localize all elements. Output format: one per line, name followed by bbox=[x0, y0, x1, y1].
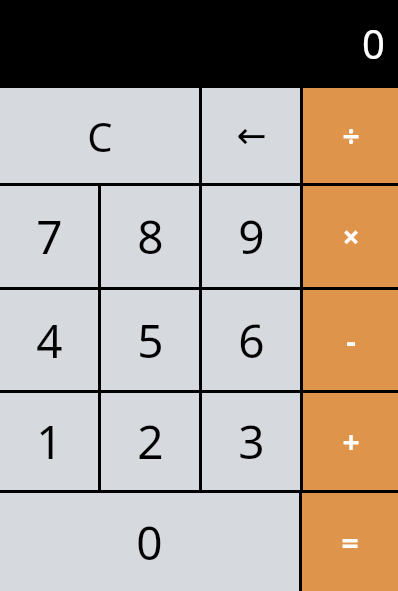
button[interactable]: Divide bbox=[303, 88, 398, 183]
staticText: 8 bbox=[137, 205, 164, 268]
staticText: ← bbox=[236, 115, 267, 157]
button[interactable]: C bbox=[0, 88, 199, 183]
button[interactable]: Backspace bbox=[202, 88, 300, 183]
staticText: 9 bbox=[238, 205, 265, 268]
staticText: × bbox=[342, 216, 360, 257]
staticText: 3 bbox=[238, 410, 265, 473]
button[interactable]: Minus bbox=[303, 290, 398, 390]
staticText: 6 bbox=[238, 309, 265, 372]
staticText: + bbox=[342, 421, 360, 462]
button[interactable]: 5 bbox=[101, 290, 199, 390]
button[interactable]: Plus bbox=[303, 393, 398, 490]
staticText: 1 bbox=[36, 410, 63, 473]
button[interactable]: 4 bbox=[0, 290, 98, 390]
staticText: 0 bbox=[362, 16, 385, 70]
staticText: 5 bbox=[137, 309, 164, 372]
button[interactable]: 0 bbox=[0, 493, 299, 591]
button[interactable]: 9 bbox=[202, 186, 300, 287]
button[interactable]: 7 bbox=[0, 186, 98, 287]
staticText: 2 bbox=[137, 410, 164, 473]
staticText: - bbox=[346, 320, 356, 361]
staticText: = bbox=[341, 522, 359, 563]
button[interactable]: 3 bbox=[202, 393, 300, 490]
button[interactable]: 1 bbox=[0, 393, 98, 490]
staticText: ÷ bbox=[342, 115, 360, 156]
button[interactable]: 6 bbox=[202, 290, 300, 390]
button[interactable]: 8 bbox=[101, 186, 199, 287]
staticText: 4 bbox=[36, 309, 63, 372]
staticText: 7 bbox=[36, 205, 63, 268]
button[interactable]: Multiply bbox=[303, 186, 398, 287]
button[interactable]: 2 bbox=[101, 393, 199, 490]
button[interactable]: Equals bbox=[302, 493, 398, 591]
staticText: C bbox=[87, 109, 113, 163]
staticText: 0 bbox=[136, 511, 163, 574]
